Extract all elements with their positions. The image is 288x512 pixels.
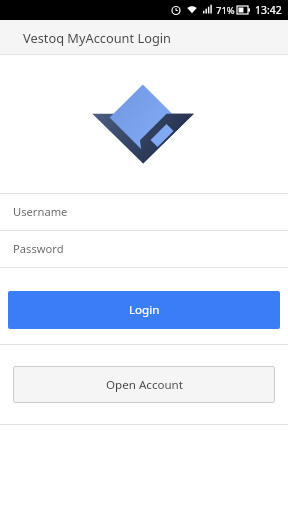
button[interactable]: Open Account bbox=[13, 366, 275, 403]
button[interactable]: Login bbox=[8, 291, 280, 329]
staticText: Password bbox=[13, 241, 64, 256]
staticText: Vestoq MyAccount Login bbox=[23, 29, 171, 46]
staticText: Username bbox=[13, 204, 68, 219]
staticText: Login bbox=[129, 302, 160, 318]
staticText: 13:42 bbox=[255, 3, 282, 17]
staticText: 71% bbox=[216, 4, 235, 17]
staticText: Open Account bbox=[106, 377, 183, 393]
